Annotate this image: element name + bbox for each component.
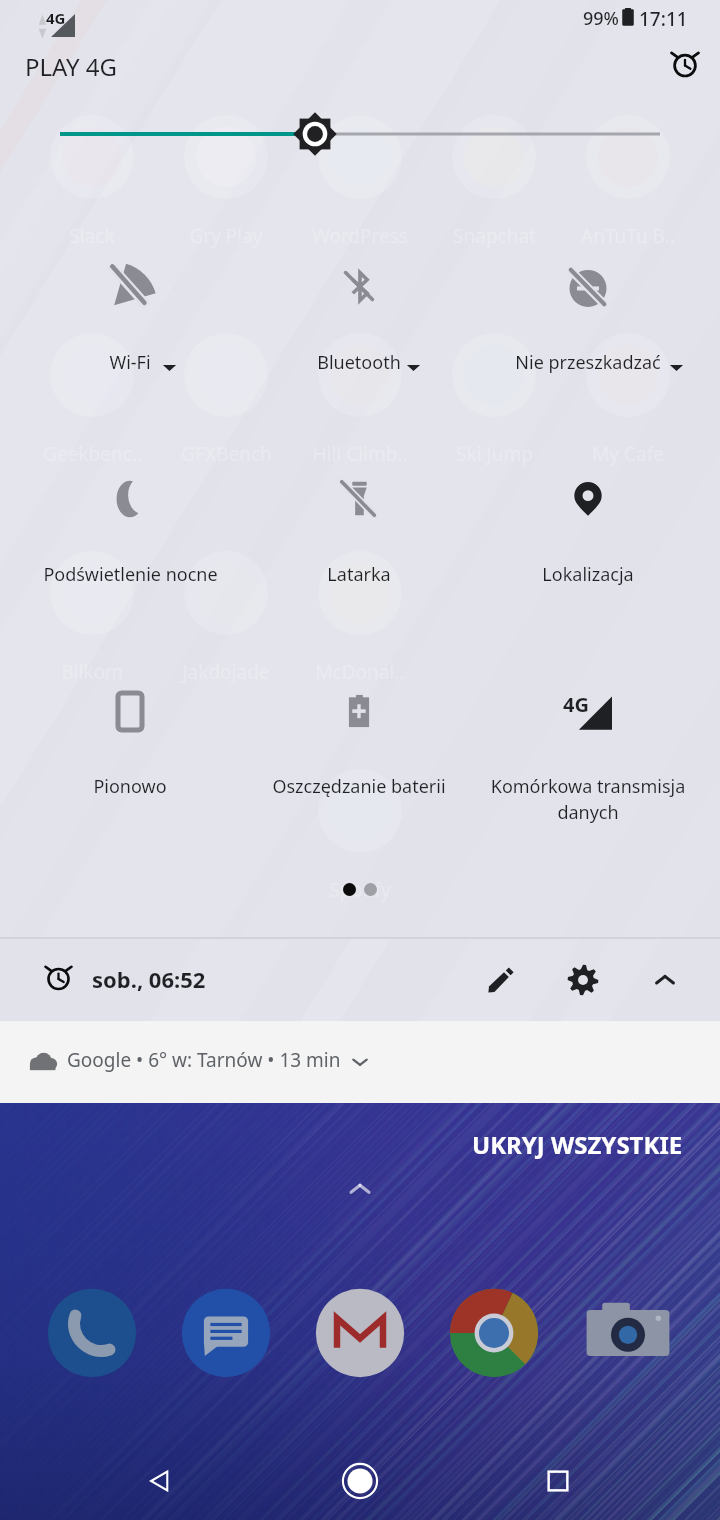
button[interactable]: Alarm	[656, 34, 714, 92]
button[interactable]: Pionowo	[16, 661, 244, 821]
staticText: PLAY 4G	[25, 50, 118, 83]
button[interactable]: Podświetlenie nocne	[16, 449, 244, 609]
button[interactable]: Latarka	[245, 449, 473, 609]
button[interactable]: Edit	[471, 950, 531, 1010]
staticText: Google • 6° w: Tarnów • 13 min	[67, 1047, 341, 1073]
staticText: Oszczędzanie baterii	[272, 774, 446, 799]
button[interactable]: Gmail	[312, 1285, 408, 1381]
staticText: 4G	[563, 691, 589, 718]
button[interactable]: Camera	[580, 1285, 676, 1381]
staticText: Pionowo	[93, 774, 167, 799]
button[interactable]: Bluetooth	[245, 237, 473, 397]
staticText: 4G	[46, 8, 66, 28]
button[interactable]: Collapse	[635, 950, 695, 1010]
staticText: Komórkowa transmisja danych	[478, 774, 698, 825]
button[interactable]: Wi-Fi	[16, 237, 244, 397]
button[interactable]: Nie przeszkadzać	[474, 237, 702, 397]
button[interactable]: sob., 06:52	[0, 939, 720, 1021]
button[interactable]: UKRYJ WSZYSTKIE	[472, 1128, 683, 1161]
staticText: 99%	[583, 6, 619, 31]
button[interactable]: Chrome	[446, 1285, 542, 1381]
button[interactable]: Settings	[553, 950, 613, 1010]
staticText: Wi-Fi	[109, 350, 151, 375]
button[interactable]: Phone	[44, 1285, 140, 1381]
staticText: Spotify	[329, 877, 391, 903]
staticText: 17:11	[639, 6, 688, 32]
staticText: sob., 06:52	[92, 964, 206, 994]
staticText: Latarka	[327, 562, 391, 587]
button[interactable]: Google • 6° w: Tarnów • 13 min	[0, 1021, 720, 1103]
staticText: Bluetooth	[317, 350, 401, 375]
button[interactable]: Oszczędzanie baterii	[245, 661, 473, 821]
button[interactable]: Messages	[178, 1285, 274, 1381]
button[interactable]: Lokalizacja	[474, 449, 702, 609]
button[interactable]: Back	[125, 1446, 195, 1516]
staticText: Nie przeszkadzać	[515, 350, 661, 375]
button[interactable]: 4G	[474, 661, 702, 821]
staticText: Podświetlenie nocne	[43, 562, 218, 587]
button[interactable]: Recents	[523, 1446, 593, 1516]
button[interactable]: Home	[325, 1446, 395, 1516]
staticText: Lokalizacja	[542, 562, 634, 587]
